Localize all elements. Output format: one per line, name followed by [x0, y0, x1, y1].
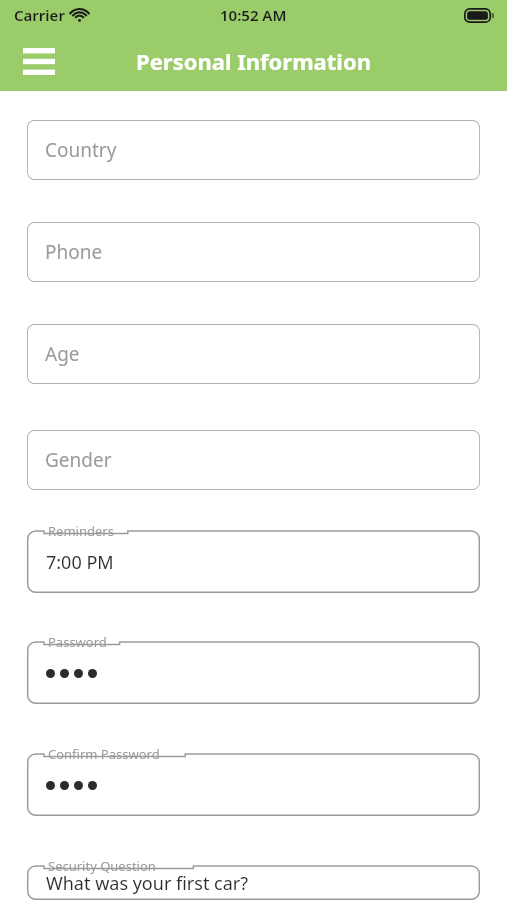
button[interactable]: Gender — [27, 430, 480, 490]
button[interactable]: Country — [27, 120, 480, 180]
button[interactable]: Password — [27, 633, 480, 704]
staticText: Age — [45, 341, 80, 367]
staticText: Gender — [45, 447, 112, 473]
button[interactable]: Open navigation menu — [15, 37, 63, 85]
button[interactable]: Phone — [27, 222, 480, 282]
button[interactable]: Age — [27, 324, 480, 384]
button[interactable]: Confirm Password — [27, 745, 480, 816]
staticText: Confirm Password — [48, 745, 160, 763]
staticText: What was your first car? — [46, 871, 249, 896]
staticText: Reminders — [48, 522, 114, 540]
button[interactable]: Security Question — [27, 857, 480, 900]
button[interactable]: Reminders — [27, 522, 480, 593]
staticText: 10:52 AM — [220, 5, 287, 25]
staticText: Security Question — [48, 857, 156, 875]
staticText: Carrier — [14, 5, 65, 25]
staticText: Personal Information — [136, 46, 371, 76]
staticText: Country — [45, 137, 117, 163]
staticText: 7:00 PM — [46, 550, 114, 575]
staticText: Password — [48, 633, 107, 651]
staticText: Phone — [45, 239, 103, 265]
